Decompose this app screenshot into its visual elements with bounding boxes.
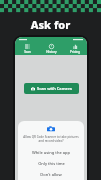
staticText: Ask for Permission xyxy=(0,17,101,47)
other: Camera xyxy=(47,126,55,132)
button[interactable]: Scan xyxy=(15,42,39,55)
staticText: Allow QR Code Scanner to take pictures a… xyxy=(23,135,79,143)
button[interactable]: Don't allow xyxy=(18,169,84,180)
button[interactable]: History xyxy=(39,42,63,55)
button[interactable]: While using the app xyxy=(18,147,84,158)
button[interactable]: Scan with Camera xyxy=(24,83,79,94)
staticText: Only this time xyxy=(38,161,65,166)
staticText: While using the app xyxy=(32,150,70,155)
staticText: Don't allow xyxy=(40,172,62,177)
button[interactable]: Pricing xyxy=(63,42,87,55)
staticText: Scan with Camera xyxy=(37,86,72,91)
staticText: Scan xyxy=(24,50,31,54)
staticText: History xyxy=(46,50,57,54)
staticText: Pricing xyxy=(70,50,80,54)
button[interactable]: Only this time xyxy=(18,158,84,169)
